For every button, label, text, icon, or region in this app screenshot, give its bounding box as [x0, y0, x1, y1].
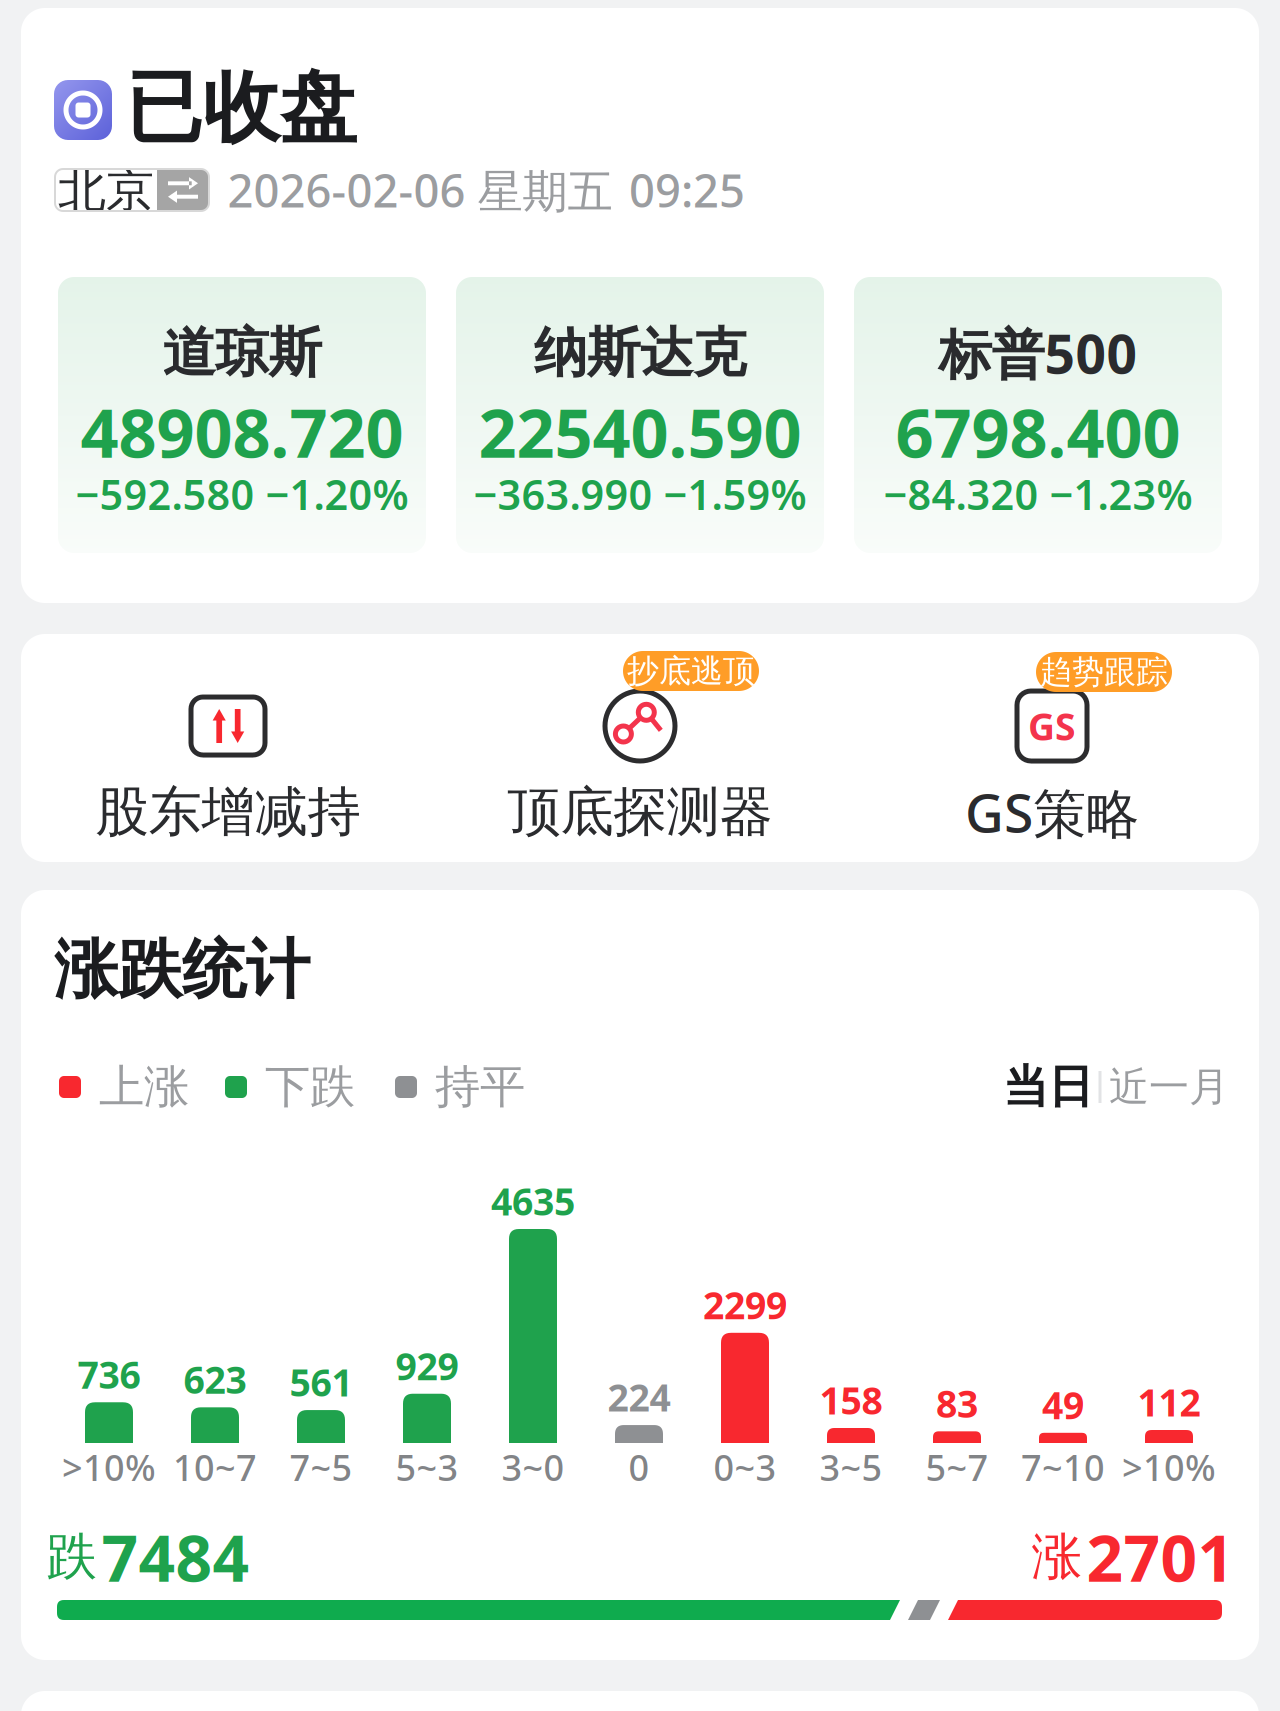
staticText: −84.320 −1.23%	[883, 467, 1192, 521]
staticText: 已收盘	[125, 60, 356, 155]
staticText: >10%	[1122, 1443, 1216, 1491]
staticText: 5~3	[395, 1443, 458, 1491]
staticText: 7~10	[1021, 1443, 1105, 1491]
button[interactable]: 道琼斯	[58, 277, 426, 553]
staticText: 929	[395, 1341, 458, 1390]
staticText: 当日	[1003, 1059, 1093, 1115]
staticText: 趋势跟踪	[1040, 652, 1168, 692]
staticText: 标普500	[938, 318, 1137, 388]
button[interactable]: 当日	[1003, 1059, 1093, 1115]
staticText: 纳斯达克	[534, 320, 746, 386]
staticText: 股东增减持	[95, 779, 360, 845]
staticText: 下跌	[265, 1059, 355, 1115]
staticText: 顶底探测器	[507, 779, 772, 845]
staticText: 道琼斯	[162, 320, 321, 386]
staticText: 623	[183, 1354, 246, 1404]
staticText: 持平	[435, 1059, 525, 1115]
staticText: 4635	[491, 1176, 575, 1226]
staticText: 5~7	[925, 1443, 988, 1491]
staticText: 22540.590	[478, 388, 801, 476]
staticText: 7~5	[289, 1443, 352, 1491]
button[interactable]: GS	[846, 634, 1258, 862]
staticText: 上涨	[99, 1059, 189, 1115]
staticText: >10%	[62, 1443, 156, 1491]
staticText: 224	[607, 1372, 670, 1422]
staticText: 0	[628, 1443, 649, 1491]
staticText: 涨	[1031, 1526, 1082, 1588]
staticText: 抄底逃顶	[627, 651, 755, 691]
staticText: 7484	[101, 1514, 249, 1599]
button[interactable]: 纳斯达克	[456, 277, 824, 553]
staticText: 2701	[1086, 1514, 1234, 1599]
staticText: 6798.400	[895, 388, 1180, 476]
button[interactable]: 股东增减持	[22, 634, 434, 862]
staticText: 83	[936, 1378, 978, 1428]
staticText: GS	[1028, 701, 1076, 751]
staticText: 近一月	[1109, 1062, 1229, 1111]
staticText: GS策略	[965, 776, 1139, 848]
staticText: 49	[1042, 1380, 1084, 1430]
staticText: 涨跌统计	[54, 931, 310, 1009]
staticText: 3~5	[819, 1443, 882, 1491]
staticText: −592.580 −1.20%	[75, 467, 408, 521]
staticText: 10~7	[173, 1443, 257, 1491]
button[interactable]: 顶底探测器	[434, 634, 846, 862]
button[interactable]: 近一月	[1109, 1062, 1229, 1111]
staticText: 2026-02-06 星期五	[227, 160, 612, 220]
staticText: 3~0	[501, 1443, 564, 1491]
staticText: 0~3	[713, 1443, 776, 1491]
staticText: 112	[1137, 1377, 1200, 1427]
staticText: 09:25	[629, 160, 745, 220]
staticText: 北京	[58, 160, 154, 219]
staticText: 2299	[703, 1280, 787, 1330]
staticText: 48908.720	[80, 388, 403, 476]
staticText: −363.990 −1.59%	[473, 467, 806, 521]
staticText: 736	[77, 1349, 140, 1399]
staticText: 跌	[46, 1526, 97, 1588]
staticText: 158	[819, 1375, 882, 1425]
button[interactable]: 切换时区	[55, 169, 209, 211]
button[interactable]: 标普500	[854, 277, 1222, 553]
staticText: 561	[289, 1357, 352, 1407]
